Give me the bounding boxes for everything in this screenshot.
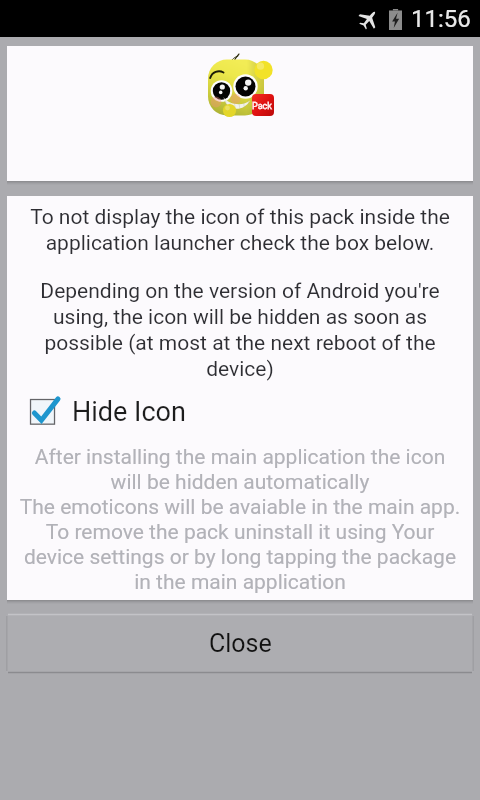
staticText: Hide Icon: [72, 396, 186, 428]
staticText: Pack: [252, 101, 272, 112]
button[interactable]: Close: [6, 613, 474, 674]
staticText: Depending on the version of Android you'…: [11, 279, 469, 381]
staticText: After installing the main application th…: [11, 445, 469, 595]
staticText: To not display the icon of this pack ins…: [11, 205, 469, 255]
staticText: 11:56: [411, 5, 471, 33]
other: Battery charging: [389, 9, 402, 30]
other: Airplane mode: [356, 6, 382, 32]
button[interactable]: Hide Icon: [7, 395, 473, 429]
staticText: Close: [209, 629, 272, 658]
